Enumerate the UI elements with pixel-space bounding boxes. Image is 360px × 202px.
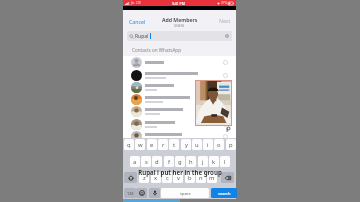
button[interactable] [123,69,236,81]
staticText: e [150,141,154,149]
staticText: d [155,158,159,166]
staticText: h [189,158,193,166]
button[interactable]: Backspace [221,172,234,183]
staticText: i [207,141,209,149]
staticText: search [218,191,231,196]
button[interactable]: i [203,139,213,150]
button[interactable]: e [147,139,157,150]
staticText: 9:41 PM [172,1,185,6]
button[interactable]: w [135,139,145,150]
staticText: b [188,174,192,182]
button[interactable]: Emoji keyboard [136,188,147,198]
button[interactable]: p [226,139,236,150]
staticText: r [162,141,165,149]
button[interactable]: search [211,188,237,198]
button[interactable]: a [130,156,140,167]
button[interactable]: Video call preview [196,81,231,125]
staticText: Rupal [135,33,149,40]
staticText: y [185,141,188,149]
button[interactable] [123,56,236,68]
staticText: p [229,141,233,149]
button[interactable] [123,130,236,142]
staticText: s [145,158,148,166]
button[interactable]: c [162,172,172,183]
button[interactable]: Dictate [149,188,160,198]
button[interactable]: Next [219,17,236,24]
staticText: u [195,141,199,149]
staticText: v [177,174,180,182]
button[interactable]: Shift [124,172,137,183]
staticText: z [143,174,146,182]
button[interactable]: l [220,156,230,167]
button[interactable]: d [152,156,162,167]
button[interactable]: n [196,172,206,183]
staticText: f [168,158,170,166]
staticText: j [202,158,204,166]
staticText: k [212,158,216,166]
staticText: space [180,191,191,196]
staticText: 0/4656 [174,24,185,28]
button[interactable]: g [175,156,185,167]
staticText: q [127,141,131,149]
button[interactable]: t [169,139,179,150]
button[interactable]: y [181,139,191,150]
button[interactable]: z [139,172,149,183]
staticText: 123 [127,191,134,196]
staticText: t [173,141,176,149]
button[interactable]: space [161,188,209,198]
staticText: o [217,141,221,149]
button[interactable]: r [158,139,168,150]
staticText: 37% [221,1,227,5]
staticText: Contacts on WhatsApp [132,47,181,53]
button[interactable]: h [186,156,196,167]
button[interactable]: u [192,139,202,150]
staticText: Add Members [162,16,198,23]
staticText: n [199,174,203,182]
button[interactable] [123,93,236,105]
button[interactable]: j [198,156,208,167]
button[interactable]: m [207,172,217,183]
button[interactable] [123,81,236,93]
button[interactable]: k [209,156,219,167]
button[interactable]: 123 [124,188,136,198]
button[interactable]: b [185,172,195,183]
button[interactable]: x [151,172,161,183]
button[interactable]: q [124,139,134,150]
button[interactable]: Rupal [127,31,232,41]
staticText: m [209,174,215,182]
button[interactable]: f [164,156,174,167]
staticText: Jio LTE [131,1,141,5]
staticText: l [224,158,226,166]
staticText: w [138,141,143,149]
button[interactable] [123,105,236,117]
staticText: x [154,174,158,182]
button[interactable]: Cancel [128,17,147,26]
button[interactable] [123,118,236,130]
staticText: c [166,174,169,182]
other: Clear text [225,34,229,38]
button[interactable]: s [141,156,151,167]
button[interactable]: v [173,172,183,183]
staticText: Rupal i put her in the group [138,168,222,176]
button[interactable]: o [214,139,224,150]
staticText: a [133,158,137,166]
staticText: g [178,158,182,166]
